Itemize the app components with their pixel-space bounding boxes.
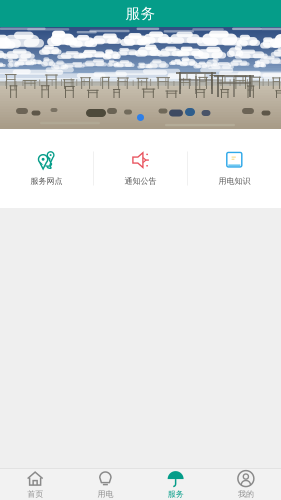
button[interactable]: 用电 (70, 465, 140, 500)
staticText: 我的 (238, 489, 254, 499)
staticText: 服务网点 (30, 176, 62, 186)
button[interactable]: 首页 (0, 465, 70, 500)
button[interactable]: 我的 (211, 465, 281, 500)
staticText: 服务 (168, 489, 184, 499)
button[interactable]: 用电知识 (188, 129, 281, 208)
staticText: 用电 (97, 489, 113, 499)
staticText: 通知公告 (124, 176, 156, 186)
staticText: 服务 (125, 4, 155, 22)
button[interactable]: 服务 (140, 465, 211, 500)
button[interactable]: 通知公告 (94, 129, 187, 208)
button[interactable]: 服务网点 (0, 129, 93, 208)
staticText: 用电知识 (218, 176, 250, 186)
staticText: 首页 (27, 489, 43, 499)
